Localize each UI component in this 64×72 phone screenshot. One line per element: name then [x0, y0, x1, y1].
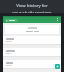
- staticText: View history for: [16, 3, 48, 9]
- button[interactable]: Add session: [55, 64, 60, 69]
- staticText: your study sessions: [12, 10, 52, 16]
- button[interactable]: [3, 60, 61, 68]
- button[interactable]: More options: [56, 17, 59, 23]
- button[interactable]: Search: [5, 19, 18, 22]
- button[interactable]: [5, 25, 59, 34]
- button[interactable]: [3, 48, 61, 56]
- button[interactable]: [3, 36, 61, 44]
